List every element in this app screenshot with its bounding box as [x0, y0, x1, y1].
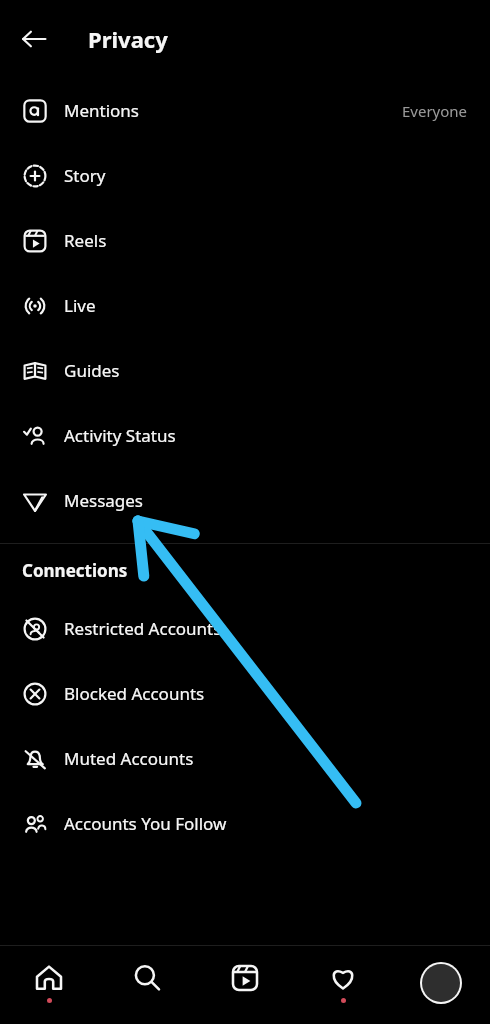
button[interactable]: Restricted Accounts [0, 596, 490, 661]
button[interactable]: Muted Accounts [0, 726, 490, 791]
staticText: Restricted Accounts [64, 617, 468, 640]
staticText: Muted Accounts [64, 747, 468, 770]
staticText: Mentions [64, 99, 402, 122]
button[interactable]: Back [10, 15, 58, 63]
button[interactable]: Profile [392, 946, 490, 1024]
staticText: Blocked Accounts [64, 682, 468, 705]
button[interactable]: Live [0, 273, 490, 338]
button[interactable]: Home [0, 946, 98, 1024]
button[interactable]: Messages [0, 468, 490, 533]
button[interactable]: Search [98, 946, 196, 1024]
staticText: Accounts You Follow [64, 812, 468, 835]
staticText: Activity Status [64, 424, 468, 447]
button[interactable]: Story [0, 143, 490, 208]
staticText: Connections [22, 559, 128, 582]
button[interactable]: Accounts You Follow [0, 791, 490, 856]
button[interactable]: Activity Status [0, 403, 490, 468]
staticText: Live [64, 294, 468, 317]
staticText: Messages [64, 489, 468, 512]
button[interactable]: Blocked Accounts [0, 661, 490, 726]
button[interactable]: Reels [0, 208, 490, 273]
staticText: Reels [64, 229, 468, 252]
button[interactable]: Guides [0, 338, 490, 403]
staticText: Story [64, 164, 468, 187]
staticText: Guides [64, 359, 468, 382]
button[interactable]: Mentions [0, 78, 490, 143]
button[interactable]: Reels [196, 946, 294, 1024]
staticText: Privacy [88, 24, 168, 54]
staticText: Everyone [402, 101, 468, 121]
button[interactable]: Activity [294, 946, 392, 1024]
